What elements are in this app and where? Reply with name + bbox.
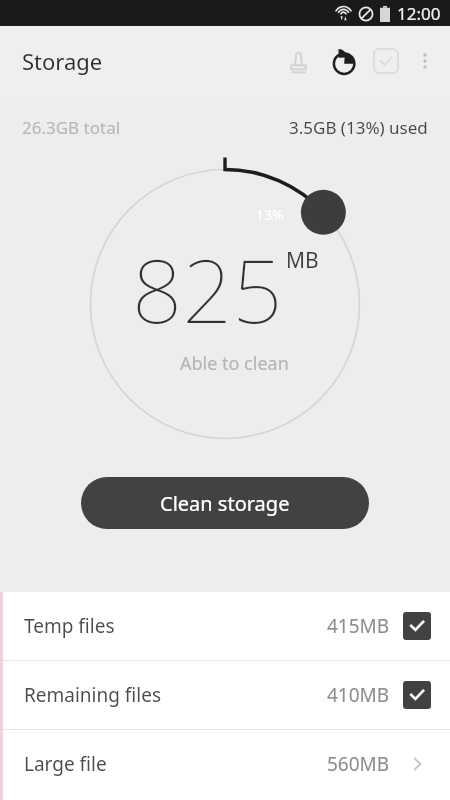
staticText: Temp files (24, 613, 115, 639)
button[interactable]: Clean storage (81, 477, 369, 529)
staticText: 26.3GB total (22, 116, 121, 139)
staticText: 12:00 (397, 2, 441, 25)
staticText: Able to clean (180, 351, 289, 376)
staticText: 415MB (327, 613, 390, 639)
staticText: 410MB (327, 682, 390, 708)
button[interactable]: Remaining files (0, 661, 450, 729)
staticText: 560MB (327, 751, 390, 777)
staticText: Clean storage (160, 490, 290, 517)
button[interactable]: Select all (364, 39, 408, 83)
staticText: Large file (24, 751, 107, 777)
button[interactable]: Temp files (0, 592, 450, 660)
staticText: 3.5GB (13%) used (289, 116, 428, 139)
button[interactable]: More options (408, 44, 442, 78)
staticText: Storage (22, 46, 103, 76)
button[interactable]: Storage chart (320, 39, 364, 83)
staticText: 13% (256, 205, 284, 224)
button[interactable]: Large file (0, 730, 450, 798)
staticText: MB (286, 246, 319, 275)
staticText: Remaining files (24, 682, 162, 708)
staticText: 825 (132, 229, 283, 349)
button[interactable]: Clean brush (276, 39, 320, 83)
